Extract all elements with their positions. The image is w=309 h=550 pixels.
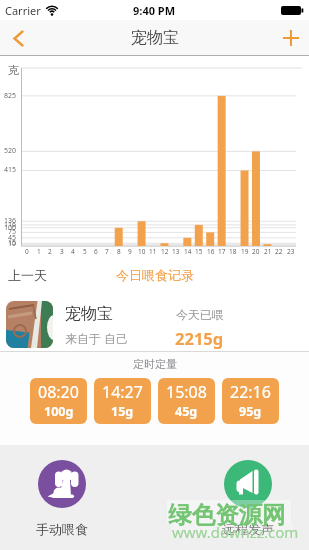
staticText: 45g (175, 403, 198, 420)
staticText: 14:27 (102, 381, 143, 403)
button[interactable]: 14:27 (94, 378, 151, 424)
staticText: 17 (218, 247, 226, 256)
staticText: www.downzz.com (172, 522, 299, 542)
button[interactable]: 22:16 (222, 378, 279, 424)
staticText: 11 (149, 247, 157, 256)
staticText: 22 (275, 247, 283, 256)
staticText: 12 (161, 247, 169, 256)
staticText: 15 (195, 247, 203, 256)
button[interactable] (224, 460, 272, 508)
button[interactable]: 上一天 (8, 267, 47, 283)
staticText: 415 (4, 165, 17, 175)
staticText: 2 (48, 247, 52, 256)
staticText: 9:40 PM (133, 3, 176, 18)
staticText: 15 (8, 238, 17, 248)
staticText: 45 (8, 233, 17, 243)
staticText: 100g (44, 403, 74, 420)
staticText: 来自于 自己 (65, 330, 129, 346)
staticText: 今日喂食记录 (116, 267, 194, 283)
staticText: 19 (241, 247, 249, 256)
staticText: 0 (25, 247, 29, 256)
staticText: 23 (287, 247, 295, 256)
staticText: 定时定量 (133, 357, 177, 371)
staticText: 10 (8, 239, 17, 249)
staticText: 4 (71, 247, 75, 256)
staticText: 520 (4, 146, 17, 156)
staticText: 95g (239, 403, 262, 420)
staticText: 远程发声 (222, 521, 274, 537)
staticText: 22:16 (230, 381, 271, 403)
button[interactable]: 15:08 (158, 378, 215, 424)
button[interactable] (0, 20, 36, 56)
staticText: 6 (94, 247, 98, 256)
staticText: 3 (60, 247, 64, 256)
staticText: 8 (117, 247, 121, 256)
staticText: 825 (4, 91, 17, 101)
staticText: 21 (264, 247, 272, 256)
staticText: 100 (4, 223, 17, 233)
button[interactable]: 08:20 (30, 378, 87, 424)
staticText: 18 (229, 247, 237, 256)
staticText: Carrier (5, 3, 41, 18)
staticText: 10 (138, 247, 146, 256)
staticText: 13 (172, 247, 180, 256)
staticText: 2215g (175, 327, 224, 349)
staticText: 宠物宝 (131, 28, 179, 48)
staticText: 7 (105, 247, 109, 256)
button[interactable] (273, 20, 309, 56)
staticText: 克 (8, 63, 19, 77)
staticText: 136 (4, 216, 17, 226)
staticText: 08:20 (38, 381, 79, 403)
staticText: 14 (184, 247, 192, 256)
staticText: 5 (83, 247, 87, 256)
staticText: 15:08 (166, 381, 207, 403)
staticText: 1 (37, 247, 41, 256)
staticText: 宠物宝 (65, 304, 113, 324)
staticText: 75 (8, 227, 17, 237)
staticText: 9 (128, 247, 132, 256)
staticText: 绿色资源网 (168, 500, 286, 530)
staticText: 上一天 (8, 267, 47, 283)
button[interactable]: 今日喂食记录 (116, 267, 194, 283)
button[interactable]: 宠物宝 (0, 288, 309, 352)
staticText: 今天已喂 (176, 307, 224, 322)
staticText: 116 (4, 220, 17, 230)
staticText: 15g (111, 403, 134, 420)
staticText: 16 (207, 247, 215, 256)
staticText: 20 (252, 247, 260, 256)
staticText: 手动喂食 (36, 521, 88, 537)
button[interactable] (38, 460, 86, 508)
